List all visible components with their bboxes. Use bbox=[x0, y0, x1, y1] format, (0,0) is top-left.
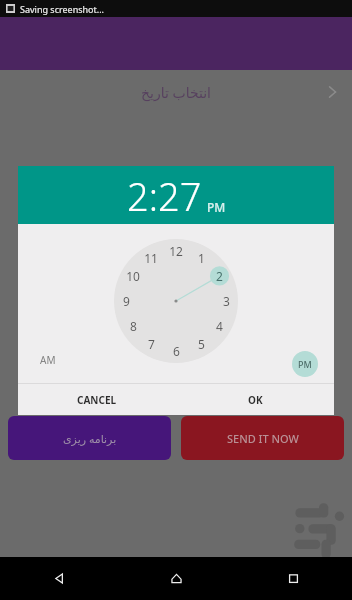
staticText: برنامه ریزی bbox=[63, 431, 117, 446]
button[interactable]: OK bbox=[176, 384, 334, 415]
staticText: PM bbox=[207, 199, 226, 215]
staticText: OK bbox=[248, 393, 263, 407]
staticText: 12 bbox=[169, 243, 183, 259]
staticText: Saving screenshot... bbox=[20, 3, 105, 15]
staticText: 8 bbox=[130, 318, 137, 334]
staticText: 10 bbox=[126, 268, 140, 284]
button[interactable]: Recents bbox=[235, 557, 352, 600]
staticText: انتخاب تاریخ bbox=[141, 83, 211, 102]
staticText: 3 bbox=[223, 293, 230, 309]
staticText: 11 bbox=[144, 250, 158, 266]
button[interactable]: CANCEL bbox=[18, 384, 176, 415]
button[interactable]: SEND IT NOW bbox=[181, 416, 344, 460]
button[interactable]: برنامه ریزی bbox=[8, 416, 171, 460]
staticText: 4 bbox=[216, 318, 223, 334]
staticText: CANCEL bbox=[77, 393, 117, 407]
staticText: 7 bbox=[148, 336, 155, 352]
button[interactable]: PM bbox=[292, 351, 318, 377]
staticText: 5 bbox=[198, 336, 205, 352]
staticText: 1 bbox=[198, 250, 205, 266]
button[interactable]: Home bbox=[118, 557, 235, 600]
staticText: PM bbox=[298, 358, 312, 370]
staticText: SEND IT NOW bbox=[227, 431, 299, 446]
staticText: 9 bbox=[123, 293, 130, 309]
staticText: 2:27 bbox=[127, 170, 202, 222]
staticText: 6 bbox=[173, 343, 180, 359]
staticText: AM bbox=[40, 353, 56, 367]
staticText: 2 bbox=[216, 268, 223, 284]
button[interactable]: Back bbox=[0, 557, 118, 600]
